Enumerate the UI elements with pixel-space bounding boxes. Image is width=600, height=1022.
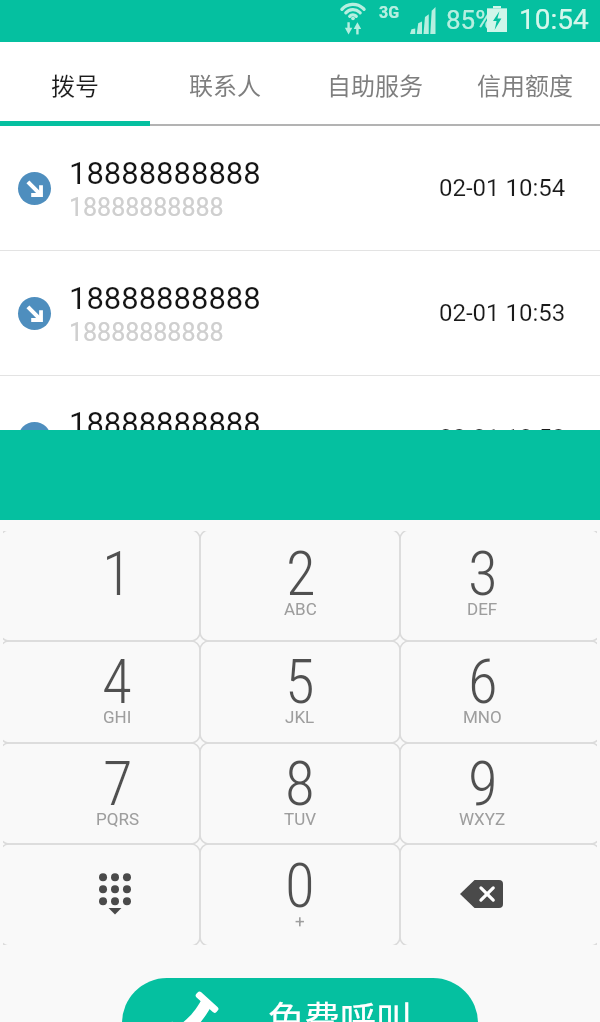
staticText: 6 [468,646,498,717]
staticText: 5 [285,646,315,717]
staticText: 自助服务 [327,67,423,102]
button[interactable]: 9 [400,743,600,844]
staticText: 3 [468,538,498,609]
button[interactable]: Hide keypad [0,844,200,946]
staticText: 10:54 [519,3,589,36]
staticText: 18888888888 [69,193,224,222]
staticText: 02-01 10:54 [439,174,566,202]
staticText: MNO [463,707,502,726]
button[interactable]: 7 [0,743,200,844]
button[interactable]: 4 [0,641,200,743]
staticText: 18888888888 [69,280,261,316]
staticText: 18888888888 [69,405,261,441]
button[interactable]: 1 [0,530,200,641]
staticText: TUV [284,809,316,828]
staticText: 7 [103,748,133,819]
button[interactable]: 18888888888 [0,376,600,500]
staticText: 18888888888 [69,318,224,347]
button[interactable]: 3 [400,530,600,641]
button[interactable]: 6 [400,641,600,743]
staticText: 02-01 10:53 [439,299,566,327]
staticText: PQRS [96,809,139,828]
button[interactable]: 拨号 [0,42,150,126]
staticText: 免费呼叫 [268,991,413,1022]
staticText: 02-01 10:52 [439,424,566,452]
button[interactable]: 8 [200,743,400,844]
staticText: 0 [285,850,315,921]
button[interactable]: 免费呼叫 [122,978,478,1022]
button[interactable]: 18888888888 [0,251,600,375]
button[interactable]: 信用额度 [450,42,600,126]
staticText: 85% [446,5,495,35]
staticText: 拨号 [51,67,99,102]
button[interactable]: 联系人 [150,42,300,126]
staticText: 8 [285,748,315,819]
staticText: 1 [102,538,132,609]
staticText: WXYZ [459,809,506,828]
button[interactable]: 0 [200,844,400,946]
button[interactable]: Backspace [400,844,600,946]
staticText: ABC [284,599,317,618]
button[interactable]: 18888888888 [0,126,600,250]
staticText: 联系人 [189,67,261,102]
staticText: 18888888888 [69,155,261,191]
staticText: JKL [285,707,315,726]
staticText: 4 [102,646,132,717]
staticText: 3G [379,3,400,22]
staticText: 信用额度 [477,67,573,102]
button[interactable]: 5 [200,641,400,743]
staticText: DEF [467,599,498,618]
button[interactable]: 自助服务 [300,42,450,126]
staticText: GHI [103,707,132,726]
staticText: 9 [468,748,498,819]
staticText: + [295,911,305,930]
staticText: 2 [286,538,316,609]
button[interactable]: 2 [200,530,400,641]
